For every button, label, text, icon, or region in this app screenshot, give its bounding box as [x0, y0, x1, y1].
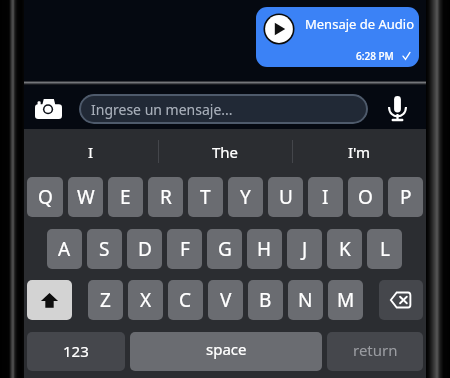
button[interactable]: N [288, 280, 323, 320]
staticText: K [339, 236, 351, 262]
staticText: Q [38, 184, 53, 210]
staticText: N [298, 287, 313, 313]
staticText: J [302, 236, 308, 262]
button[interactable]: B [248, 280, 283, 320]
staticText: Y [240, 184, 251, 210]
staticText: M [337, 287, 355, 313]
button[interactable]: 123 [27, 332, 125, 371]
staticText: T [200, 184, 211, 210]
staticText: W [77, 184, 95, 210]
staticText: The [212, 142, 239, 162]
button[interactable]: V [208, 280, 243, 320]
staticText: space [206, 339, 247, 359]
button[interactable]: The [159, 129, 292, 174]
button[interactable]: U [268, 177, 303, 217]
button[interactable]: K [327, 229, 362, 269]
staticText: Z [100, 287, 111, 313]
staticText: A [58, 236, 71, 262]
button[interactable]: H [247, 229, 282, 269]
button[interactable]: Mensaje de Audio [256, 7, 419, 67]
staticText: P [400, 184, 412, 210]
staticText: Ingrese un mensaje... [91, 100, 233, 119]
button[interactable]: J [287, 229, 322, 269]
staticText: U [279, 184, 293, 210]
button[interactable]: Ingrese un mensaje... [79, 94, 368, 124]
button[interactable]: P [388, 177, 423, 217]
button[interactable]: Z [88, 280, 123, 320]
staticText: L [380, 236, 390, 262]
staticText: Mensaje de Audio [305, 15, 415, 33]
button[interactable]: L [367, 229, 402, 269]
staticText: X [140, 287, 152, 313]
button[interactable]: M [328, 280, 363, 320]
button[interactable]: F [167, 229, 202, 269]
staticText: C [179, 287, 192, 313]
button[interactable]: Y [228, 177, 263, 217]
button[interactable]: C [168, 280, 203, 320]
staticText: G [218, 236, 232, 262]
button[interactable]: A [47, 229, 82, 269]
staticText: I [322, 184, 329, 210]
button[interactable]: X [128, 280, 163, 320]
button[interactable]: Camera [28, 88, 68, 128]
staticText: 123 [63, 341, 89, 361]
button[interactable]: I [24, 129, 158, 174]
staticText: H [257, 236, 272, 262]
staticText: I'm [348, 142, 371, 162]
button[interactable]: R [148, 177, 183, 217]
button[interactable]: I'm [293, 129, 426, 174]
staticText: S [99, 236, 110, 262]
staticText: F [180, 236, 190, 262]
button[interactable]: Voice message [379, 90, 415, 126]
button[interactable]: Shift [27, 280, 72, 320]
staticText: E [120, 184, 131, 210]
button[interactable]: E [108, 177, 143, 217]
button[interactable]: T [188, 177, 223, 217]
staticText: D [138, 236, 152, 262]
button[interactable]: return [327, 332, 423, 371]
staticText: O [358, 184, 373, 210]
staticText: I [88, 142, 94, 162]
staticText: B [259, 287, 272, 313]
button[interactable]: O [348, 177, 383, 217]
button[interactable]: Q [27, 177, 63, 217]
button[interactable]: W [68, 177, 103, 217]
button[interactable]: space [130, 332, 322, 371]
staticText: 6:28 PM [356, 49, 394, 63]
button[interactable]: I [308, 177, 343, 217]
staticText: R [160, 184, 172, 210]
staticText: V [220, 287, 232, 313]
button[interactable]: D [127, 229, 162, 269]
button[interactable]: G [207, 229, 242, 269]
button[interactable]: Backspace [379, 280, 423, 320]
staticText: return [353, 340, 398, 360]
button[interactable]: S [87, 229, 122, 269]
